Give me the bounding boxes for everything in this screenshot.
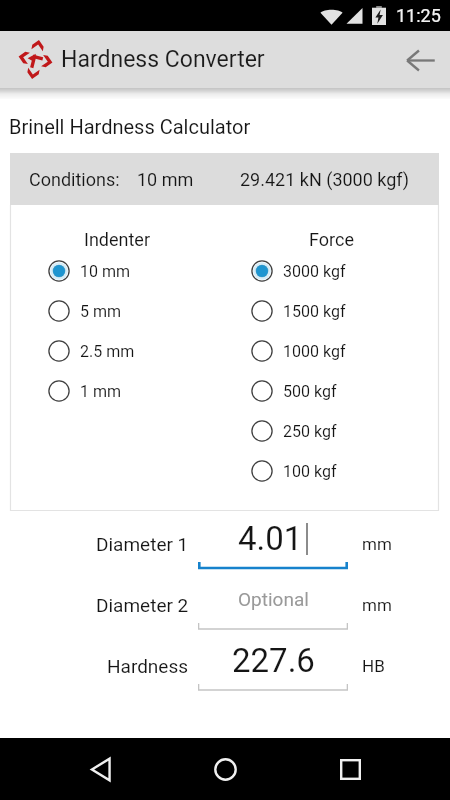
staticText: Conditions: xyxy=(29,169,120,190)
button[interactable]: 2.5 mm xyxy=(10,331,224,371)
staticText: Hardness Converter xyxy=(61,46,265,73)
button[interactable]: 1000 kgf xyxy=(224,331,439,371)
button[interactable]: 227.6 xyxy=(198,635,348,685)
button[interactable]: 10 mm xyxy=(10,251,224,291)
staticText: Diameter 2 xyxy=(96,594,189,616)
button[interactable]: Home xyxy=(200,744,250,794)
button[interactable]: 1500 kgf xyxy=(224,291,439,331)
staticText: 10 mm xyxy=(137,169,194,190)
button[interactable]: 3000 kgf xyxy=(224,251,439,291)
staticText: Optional xyxy=(238,588,309,610)
staticText: 100 kgf xyxy=(283,462,337,481)
staticText: 227.6 xyxy=(232,641,315,680)
staticText: mm xyxy=(362,595,392,615)
button[interactable]: 4.01 xyxy=(198,513,348,563)
staticText: 2.5 mm xyxy=(80,342,135,361)
staticText: 29.421 kN (3000 kgf) xyxy=(240,169,410,190)
button[interactable]: 1 mm xyxy=(10,371,224,411)
staticText: 5 mm xyxy=(80,302,122,321)
button[interactable]: 5 mm xyxy=(10,291,224,331)
button[interactable]: Back xyxy=(397,37,443,83)
staticText: 10 mm xyxy=(80,262,131,281)
button[interactable]: Back xyxy=(75,744,125,794)
staticText: 3000 kgf xyxy=(283,262,346,281)
staticText: Hardness xyxy=(107,655,189,677)
button[interactable]: 100 kgf xyxy=(224,451,439,491)
staticText: 500 kgf xyxy=(283,382,337,401)
staticText: 11:25 xyxy=(396,5,441,26)
staticText: Brinell Hardness Calculator xyxy=(9,115,251,138)
button[interactable]: Optional xyxy=(198,574,348,624)
button[interactable]: 250 kgf xyxy=(224,411,439,451)
staticText: HB xyxy=(362,656,385,676)
staticText: 1 mm xyxy=(80,382,122,401)
staticText: mm xyxy=(362,534,392,554)
staticText: 1500 kgf xyxy=(283,302,346,321)
button[interactable]: 500 kgf xyxy=(224,371,439,411)
staticText: 250 kgf xyxy=(283,422,337,441)
staticText: Force xyxy=(224,229,439,250)
staticText: 4.01 xyxy=(238,519,303,558)
staticText: Diameter 1 xyxy=(96,533,189,555)
button[interactable]: Recents xyxy=(325,744,375,794)
staticText: 1000 kgf xyxy=(283,342,346,361)
staticText: Indenter xyxy=(10,229,224,250)
